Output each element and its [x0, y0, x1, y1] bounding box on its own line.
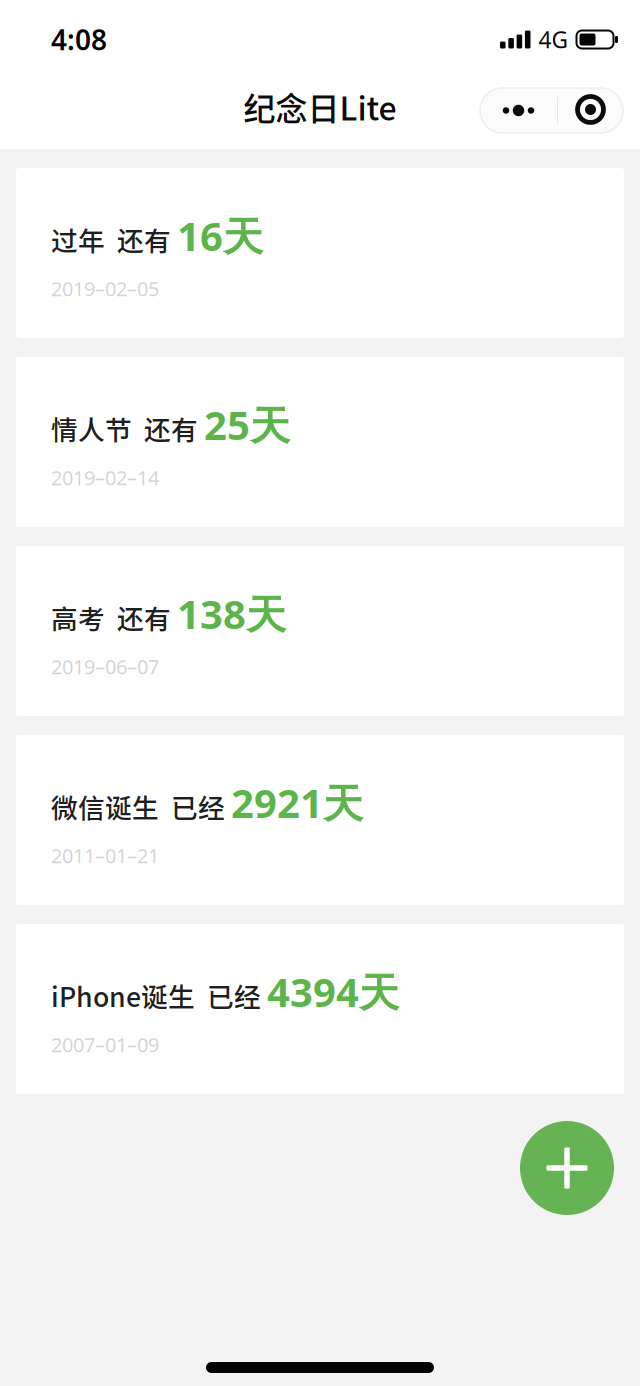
- staticText: 2011–01–21: [51, 842, 159, 869]
- staticText: 纪念日Lite: [243, 83, 396, 130]
- staticText: 情人节 还有: [51, 409, 204, 448]
- staticText: 4:08: [51, 21, 107, 58]
- staticText: 2007–01–09: [51, 1031, 159, 1058]
- button[interactable]: Close mini program: [558, 88, 623, 133]
- staticText: iPhone诞生 已经: [51, 976, 267, 1015]
- staticText: 4G: [538, 24, 568, 54]
- button[interactable]: 过年 还有: [16, 168, 624, 338]
- staticText: 4394天: [267, 965, 399, 1018]
- staticText: 16天: [177, 209, 263, 262]
- staticText: 2019–06–07: [51, 653, 159, 680]
- button[interactable]: 高考 还有: [16, 546, 624, 716]
- staticText: 25天: [204, 398, 290, 451]
- staticText: 高考 还有: [51, 598, 177, 637]
- staticText: 2019–02–05: [51, 275, 159, 302]
- staticText: 微信诞生 已经: [51, 787, 231, 826]
- staticText: 138天: [177, 587, 286, 640]
- button[interactable]: 微信诞生 已经: [16, 735, 624, 905]
- staticText: 2019–02–14: [51, 464, 159, 491]
- button[interactable]: Add anniversary: [520, 1121, 614, 1215]
- button[interactable]: 情人节 还有: [16, 357, 624, 527]
- button[interactable]: iPhone诞生 已经: [16, 924, 624, 1094]
- button[interactable]: More: [480, 88, 557, 133]
- staticText: 过年 还有: [51, 220, 177, 259]
- staticText: 2921天: [231, 776, 363, 829]
